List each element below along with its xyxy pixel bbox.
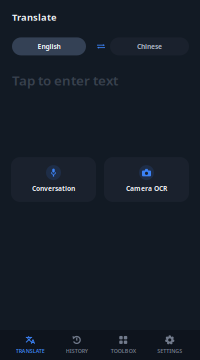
- button[interactable]: Chinese: [110, 37, 189, 55]
- button[interactable]: TOOLBOX: [100, 335, 146, 355]
- staticText: SETTINGS: [157, 347, 182, 355]
- staticText: TOOLBOX: [111, 347, 136, 355]
- button[interactable]: English: [12, 37, 86, 55]
- staticText: Translate: [12, 11, 57, 23]
- button[interactable]: TRANSLATE: [7, 335, 53, 355]
- staticText: HISTORY: [66, 347, 88, 355]
- staticText: Chinese: [137, 42, 162, 51]
- staticText: Tap to enter text: [12, 71, 118, 89]
- button[interactable]: Tap to enter text: [0, 55, 200, 93]
- button[interactable]: Camera OCR: [104, 157, 189, 202]
- staticText: Camera OCR: [126, 184, 167, 193]
- staticText: English: [37, 42, 60, 51]
- button[interactable]: SETTINGS: [146, 335, 193, 355]
- button[interactable]: Swap languages: [86, 37, 110, 55]
- staticText: Conversation: [32, 184, 75, 193]
- staticText: TRANSLATE: [16, 347, 45, 355]
- button[interactable]: Conversation: [11, 157, 96, 202]
- button[interactable]: HISTORY: [53, 335, 100, 355]
